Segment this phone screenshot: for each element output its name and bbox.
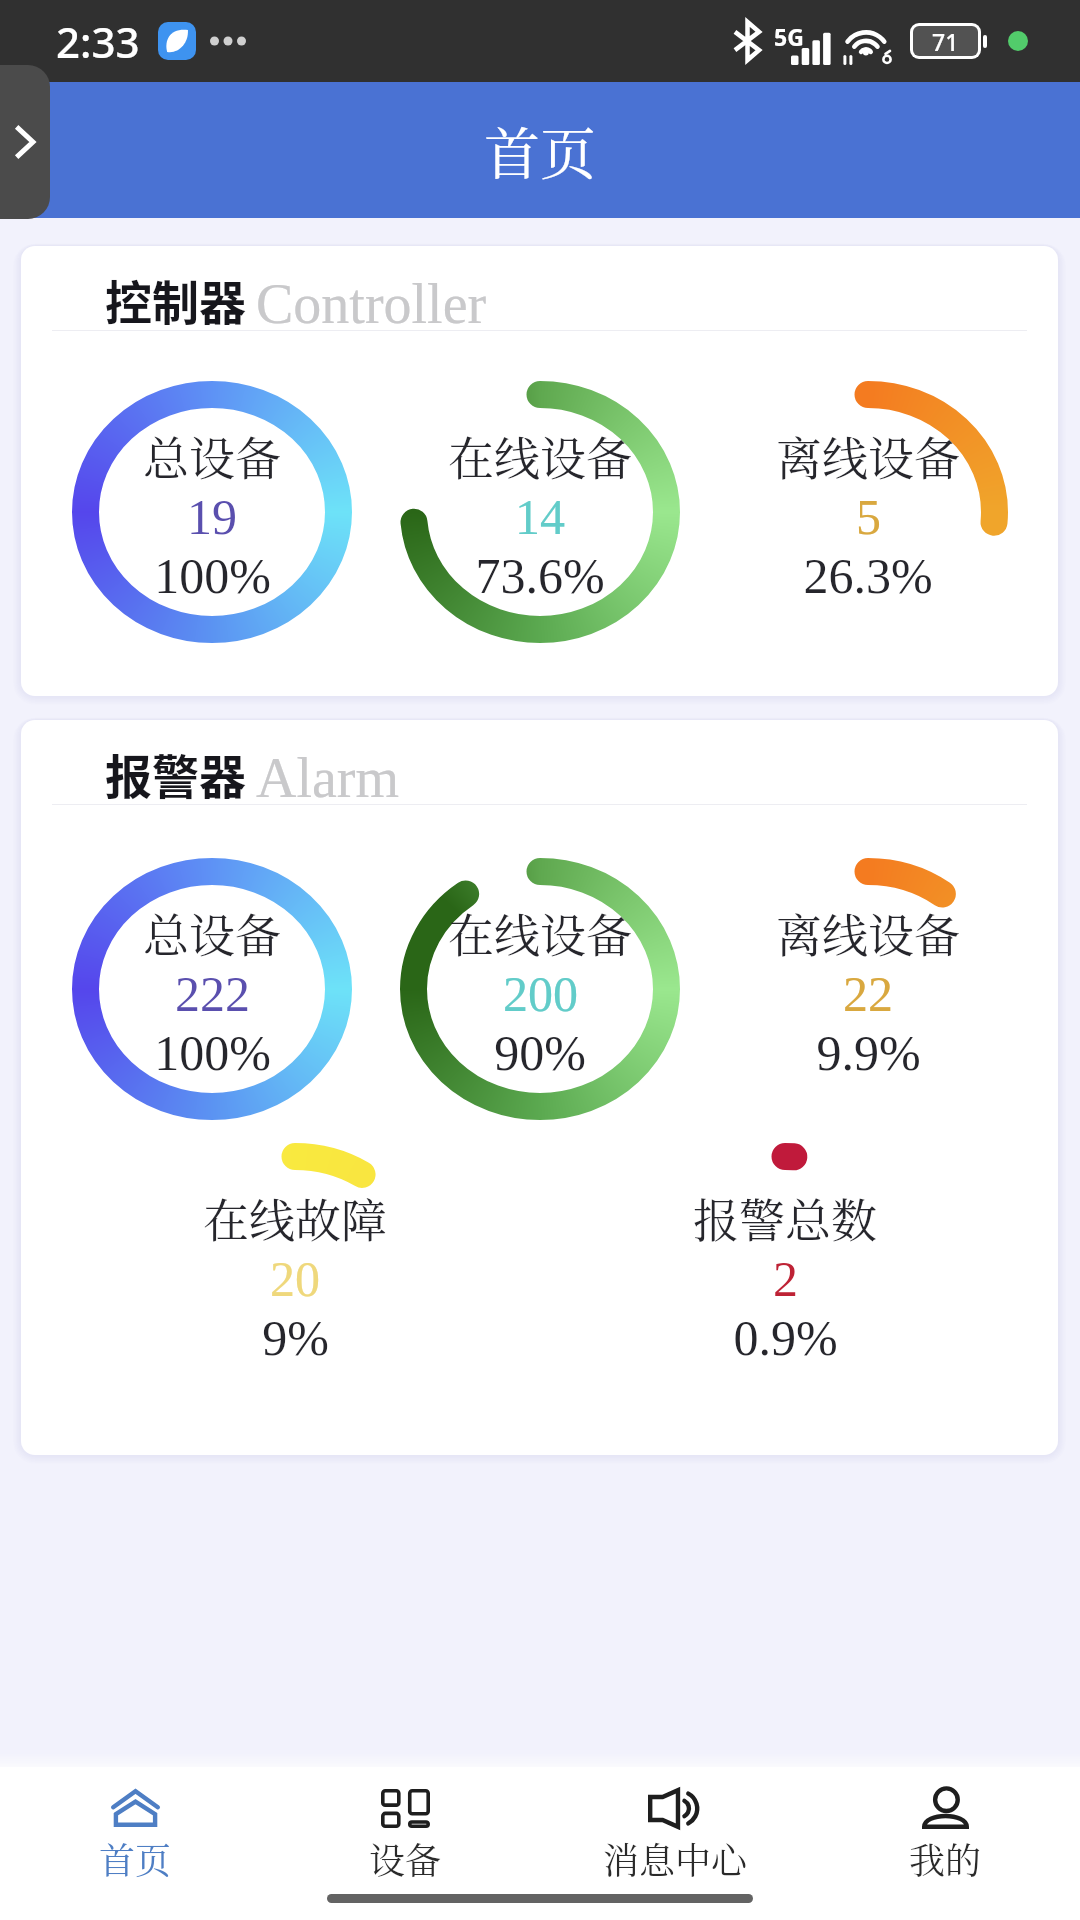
- staticText: 90%: [494, 1025, 586, 1080]
- staticText: 20: [270, 1251, 320, 1306]
- staticText: 报警总数: [693, 1184, 877, 1250]
- staticText: 100%: [154, 548, 271, 603]
- staticText: 73.6%: [475, 548, 605, 603]
- staticText: Controller: [256, 273, 487, 335]
- staticText: 2:33: [56, 13, 140, 70]
- staticText: 首页: [99, 1833, 172, 1885]
- staticText: 14: [515, 489, 565, 544]
- button[interactable]: 报警总数: [645, 1143, 925, 1405]
- button[interactable]: 在线设备: [400, 381, 680, 643]
- staticText: 设备: [369, 1833, 442, 1885]
- staticText: 消息中心: [603, 1833, 748, 1885]
- staticText: 100%: [154, 1025, 271, 1080]
- staticText: 0.9%: [733, 1310, 838, 1365]
- staticText: 离线设备: [776, 422, 960, 488]
- button[interactable]: 消息中心: [540, 1786, 810, 1896]
- staticText: 26.3%: [803, 548, 933, 603]
- staticText: 总设备: [143, 422, 281, 488]
- staticText: 19: [187, 489, 237, 544]
- button[interactable]: 总设备: [72, 381, 352, 643]
- staticText: 在线设备: [448, 422, 632, 488]
- staticText: 我的: [909, 1833, 982, 1885]
- staticText: 5: [856, 489, 881, 544]
- staticText: 离线设备: [776, 899, 960, 965]
- staticText: 22: [843, 966, 893, 1021]
- staticText: 222: [175, 966, 250, 1021]
- staticText: 在线设备: [448, 899, 632, 965]
- button[interactable]: 离线设备: [728, 381, 1008, 643]
- button[interactable]: 在线设备: [400, 858, 680, 1120]
- staticText: 9%: [262, 1310, 329, 1365]
- button[interactable]: 我的: [810, 1786, 1080, 1896]
- staticText: 总设备: [143, 899, 281, 965]
- staticText: 5G: [774, 21, 804, 52]
- staticText: 71: [932, 26, 959, 56]
- button[interactable]: 在线故障: [155, 1143, 435, 1405]
- button[interactable]: Expand menu: [0, 65, 50, 219]
- staticText: 200: [503, 966, 578, 1021]
- button[interactable]: 设备: [270, 1786, 540, 1896]
- staticText: 控制器: [105, 265, 246, 333]
- button[interactable]: 首页: [0, 1786, 270, 1896]
- button[interactable]: 离线设备: [728, 858, 1008, 1120]
- staticText: 首页: [484, 110, 596, 190]
- staticText: 2: [773, 1251, 798, 1306]
- button[interactable]: 总设备: [72, 858, 352, 1120]
- staticText: 在线故障: [203, 1184, 387, 1250]
- staticText: Alarm: [256, 747, 400, 809]
- staticText: 9.9%: [816, 1025, 921, 1080]
- staticText: 报警器: [105, 739, 246, 807]
